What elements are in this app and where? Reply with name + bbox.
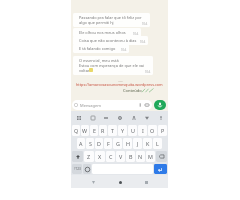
button[interactable]: J (133, 138, 142, 149)
staticText: F (107, 140, 110, 147)
button[interactable]: Keyboard tool (117, 115, 123, 121)
button[interactable]: R (99, 125, 107, 136)
button[interactable]: O essencial, meu está (73, 56, 153, 75)
button[interactable]: Keyboard tool (158, 115, 164, 121)
button[interactable]: ?123 (72, 164, 82, 174)
staticText: Passando pra falar que tô feliz por (79, 15, 142, 20)
other: Attach (138, 103, 142, 107)
staticText: Mensagem (80, 103, 101, 108)
button[interactable]: W (81, 125, 89, 136)
staticText: Coisa que não aconteceu à dias (79, 38, 137, 43)
button[interactable]: X (95, 151, 105, 162)
staticText: I (142, 127, 144, 134)
staticText: algo que permiti hj (79, 20, 114, 25)
staticText: M (148, 153, 153, 160)
staticText: W (82, 127, 88, 134)
button[interactable]: Coisa que não aconteceu à dias (73, 36, 148, 45)
staticText: C (109, 153, 113, 160)
button[interactable]: B (126, 151, 135, 162)
button[interactable]: F (104, 138, 112, 149)
staticText: B (129, 153, 133, 160)
button[interactable]: E (90, 125, 98, 136)
button[interactable]: U (128, 125, 137, 136)
button[interactable]: T (108, 125, 117, 136)
staticText: E tá falando comigo (79, 46, 116, 51)
staticText: Veja (118, 79, 123, 82)
staticText: 10:4 (142, 22, 148, 26)
button[interactable]: Passando pra falar que tô feliz por (73, 13, 150, 27)
staticText: K (146, 140, 150, 147)
staticText: Conteúdo (123, 88, 142, 93)
staticText: N (138, 153, 143, 160)
button[interactable]: K (143, 138, 152, 149)
staticText: 10:4 (121, 48, 127, 52)
staticText: voltar (79, 68, 90, 73)
staticText: Q (74, 127, 79, 134)
button[interactable]: N (136, 151, 145, 162)
staticText: R (101, 127, 105, 134)
staticText: Ele olhou nos meus olhos (79, 30, 126, 35)
staticText: A (79, 140, 83, 147)
button[interactable]: O (148, 125, 157, 136)
staticText: T (111, 127, 114, 134)
staticText: ?123 (74, 167, 81, 171)
staticText: D (97, 140, 101, 147)
staticText: 10:4 (140, 40, 146, 44)
staticText: Y (121, 127, 125, 134)
staticText: O essencial, meu está (79, 58, 119, 63)
button[interactable]: E tá falando comigo (73, 44, 129, 53)
button[interactable]: V (116, 151, 125, 162)
button[interactable]: Home (115, 177, 125, 187)
staticText: O (150, 127, 155, 134)
button[interactable]: Emoji (83, 164, 91, 174)
button[interactable]: P (158, 125, 167, 136)
staticText: Estou com esperança de que ele vai (79, 63, 145, 68)
button[interactable]: C (106, 151, 115, 162)
staticText: E (93, 127, 96, 134)
button[interactable]: Enter (154, 164, 167, 174)
button[interactable]: Backspace (156, 151, 167, 162)
button[interactable]: Keyboard tool (76, 115, 82, 121)
button[interactable]: Keyboard tool (103, 115, 109, 121)
button[interactable]: S (86, 138, 94, 149)
staticText: https://amarcosasounomesquita.wordpress.… (76, 82, 163, 87)
staticText: V (119, 153, 123, 160)
staticText: J (137, 140, 139, 147)
button[interactable]: Z (84, 151, 94, 162)
button[interactable]: I (138, 125, 147, 136)
button[interactable]: Ele olhou nos meus olhos (73, 28, 141, 37)
staticText: ↵ (158, 166, 164, 173)
button[interactable]: Keyboard tool (131, 115, 137, 121)
staticText: L (156, 140, 159, 147)
button[interactable]: Recents (141, 177, 151, 187)
staticText: X (98, 153, 102, 160)
button[interactable]: Mensagem (74, 100, 150, 110)
staticText: 10:4 (133, 32, 139, 36)
button[interactable]: A (77, 138, 85, 149)
staticText: P (161, 127, 165, 134)
button[interactable]: D (95, 138, 103, 149)
staticText: U (131, 127, 135, 134)
button[interactable]: Q (72, 125, 80, 136)
other: Camera (145, 103, 149, 107)
button[interactable]: Back (88, 177, 98, 187)
button[interactable]: Y (118, 125, 127, 136)
staticText: H (126, 140, 130, 147)
button[interactable]: G (113, 138, 122, 149)
staticText: Z (87, 153, 91, 160)
staticText: S (89, 140, 92, 147)
button[interactable]: Keyboard tool (90, 115, 96, 121)
button[interactable]: L (153, 138, 162, 149)
button[interactable]: M (146, 151, 155, 162)
button[interactable]: H (123, 138, 132, 149)
staticText: G (116, 140, 120, 147)
staticText: 10:4 (145, 70, 151, 74)
button[interactable]: Shift (72, 151, 83, 162)
button[interactable]: Keyboard tool (144, 115, 150, 121)
button[interactable]: Record voice message (154, 100, 166, 110)
